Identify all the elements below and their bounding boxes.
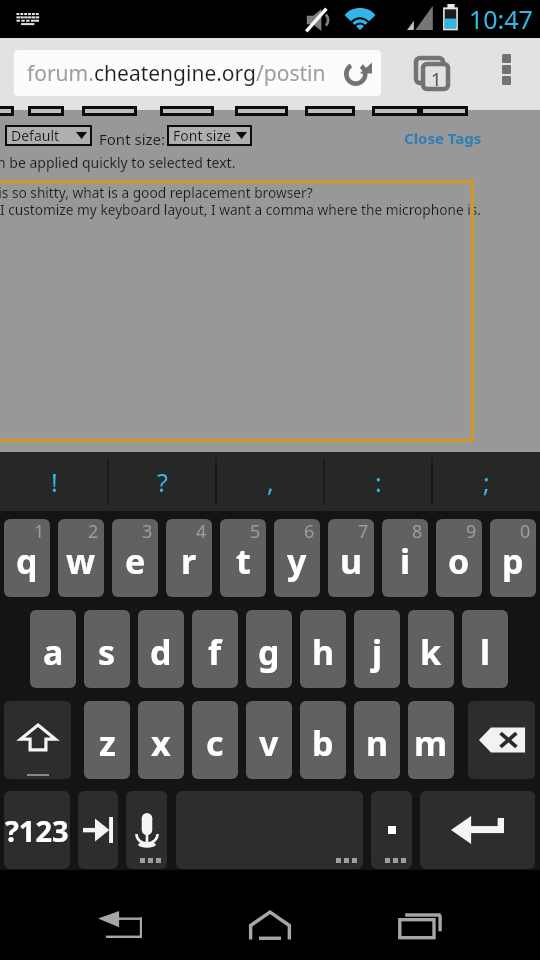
button[interactable]: v: [246, 701, 292, 779]
staticText: 10:47: [469, 2, 533, 36]
staticText: o: [448, 538, 470, 584]
staticText: /postin: [256, 59, 326, 88]
button[interactable]: Back: [60, 870, 180, 960]
staticText: 4: [196, 519, 207, 544]
button[interactable]: Shift: [4, 701, 71, 779]
button[interactable]: Backspace: [468, 701, 535, 779]
staticText: m: [414, 720, 448, 766]
staticText: Default: [11, 126, 60, 145]
staticText: 9: [466, 519, 477, 544]
staticText: r: [181, 538, 197, 584]
button[interactable]: More options: [484, 46, 528, 92]
staticText: :: [375, 465, 382, 499]
staticText: 2: [88, 519, 99, 544]
button[interactable]: 2: [58, 519, 104, 597]
button[interactable]: Tab: [78, 791, 118, 869]
staticText: x: [151, 720, 171, 766]
staticText: j: [372, 629, 383, 675]
staticText: z: [99, 720, 116, 766]
staticText: d: [150, 629, 172, 675]
staticText: n: [366, 720, 389, 766]
staticText: v: [259, 720, 279, 766]
staticText: w: [66, 538, 96, 584]
staticText: 1: [431, 67, 442, 92]
staticText: ,: [267, 465, 274, 499]
staticText: ?: [157, 465, 168, 499]
staticText: a: [43, 629, 64, 675]
staticText: c: [206, 720, 224, 766]
button[interactable]: a: [30, 610, 76, 688]
button[interactable]: ,: [216, 452, 324, 511]
button[interactable]: Symbols: [4, 791, 70, 869]
staticText: e is so shitty, what is a good replaceme…: [0, 183, 313, 202]
staticText: t: [236, 538, 251, 584]
button[interactable]: d: [138, 610, 184, 688]
button[interactable]: 3: [112, 519, 158, 597]
staticText: forum.: [27, 59, 94, 88]
staticText: 0: [520, 519, 531, 544]
staticText: Font size:: [99, 129, 166, 149]
staticText: s: [98, 629, 116, 675]
staticText: ;: [483, 465, 490, 499]
button[interactable]: b: [300, 701, 346, 779]
staticText: cheatengine.org: [94, 59, 256, 88]
button[interactable]: 4: [166, 519, 212, 597]
button[interactable]: g: [246, 610, 292, 688]
staticText: !: [51, 465, 58, 499]
staticText: I customize my keyboard layout, I want a…: [0, 200, 480, 219]
button[interactable]: m: [408, 701, 454, 779]
staticText: k: [420, 629, 442, 675]
staticText: 3: [142, 519, 153, 544]
staticText: f: [208, 629, 222, 675]
staticText: b: [312, 720, 334, 766]
staticText: p: [502, 538, 524, 584]
button[interactable]: Recent apps: [360, 870, 480, 960]
button[interactable]: x: [138, 701, 184, 779]
staticText: 8: [412, 519, 423, 544]
button[interactable]: 7: [328, 519, 374, 597]
button[interactable]: Voice input: [126, 791, 167, 869]
button[interactable]: l: [462, 610, 508, 688]
staticText: e: [125, 538, 146, 584]
button[interactable]: Enter: [420, 791, 535, 869]
button[interactable]: 0: [490, 519, 536, 597]
button[interactable]: k: [408, 610, 454, 688]
button[interactable]: Period: [371, 791, 412, 869]
button[interactable]: f: [192, 610, 238, 688]
staticText: ?123: [5, 811, 69, 850]
button[interactable]: z: [84, 701, 130, 779]
staticText: 1: [34, 519, 45, 544]
staticText: u: [340, 538, 363, 584]
staticText: h: [312, 629, 335, 675]
button[interactable]: !: [0, 452, 108, 511]
staticText: 7: [358, 519, 369, 544]
button[interactable]: c: [192, 701, 238, 779]
button[interactable]: Tabs, 1 open: [398, 40, 466, 96]
button[interactable]: 5: [220, 519, 266, 597]
staticText: 5: [250, 519, 261, 544]
button[interactable]: Font size: [167, 125, 252, 146]
button[interactable]: Close Tags: [404, 128, 482, 148]
button[interactable]: Home: [210, 870, 330, 960]
button[interactable]: h: [300, 610, 346, 688]
button[interactable]: n: [354, 701, 400, 779]
button[interactable]: ;: [432, 452, 540, 511]
button[interactable]: e is so shitty, what is a good replaceme…: [0, 180, 474, 442]
staticText: l: [480, 629, 491, 675]
staticText: q: [16, 538, 38, 584]
button[interactable]: 6: [274, 519, 320, 597]
button[interactable]: ?: [108, 452, 216, 511]
staticText: y: [287, 538, 307, 584]
staticText: n be applied quickly to selected text.: [0, 153, 236, 172]
button[interactable]: forum.: [14, 50, 381, 96]
button[interactable]: j: [354, 610, 400, 688]
button[interactable]: Default: [5, 125, 92, 146]
staticText: i: [400, 538, 411, 584]
button[interactable]: s: [84, 610, 130, 688]
button[interactable]: 8: [382, 519, 428, 597]
button[interactable]: Reload page: [334, 48, 380, 90]
button[interactable]: Space: [176, 791, 363, 869]
button[interactable]: 1: [4, 519, 50, 597]
button[interactable]: :: [324, 452, 432, 511]
button[interactable]: 9: [436, 519, 482, 597]
